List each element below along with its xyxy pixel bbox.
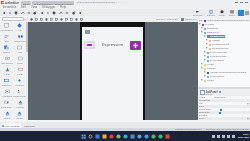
button[interactable]: View [31,5,38,9]
button[interactable]: Text [0,33,13,44]
button[interactable]: Canvas tool 2 [35,18,38,21]
button[interactable]: Taskbar app 12 [158,134,163,139]
button[interactable]: Tool 3 [14,11,18,15]
button[interactable]: Label [0,66,13,77]
button[interactable]: Timer [13,55,26,66]
button[interactable]: Installers [207,10,215,16]
button[interactable]: RadioGroup [13,88,26,99]
button[interactable]: Taskbar app 4 [102,134,107,139]
button[interactable]: Name [198,96,250,99]
button[interactable]: Tool 9 [52,11,56,15]
button[interactable]: Blocks [0,44,13,55]
button[interactable]: Tool 6 [33,11,37,15]
button[interactable]: PlusBar [198,38,250,42]
button[interactable]: Dropdown [0,99,13,110]
button[interactable]: Canvas tool 6 [55,18,58,21]
button[interactable]: Checkbox [0,88,13,99]
button[interactable]: Increase [130,41,141,50]
button[interactable]: Taskbar app 10 [144,134,149,139]
button[interactable]: Design [219,10,225,16]
button[interactable]: Blocks [229,10,235,16]
button[interactable]: Tool 2 [8,11,12,15]
button[interactable]: TypeEntry [0,77,13,88]
button[interactable]: Canvas tool 9 [70,18,73,21]
button[interactable]: Upload [13,99,26,110]
button[interactable]: ValueSelected [198,34,250,38]
button[interactable]: Event [198,117,250,120]
button[interactable]: Description [198,99,250,102]
button[interactable]: IncreaseOnClick [198,46,250,50]
button[interactable]: Taskbar app 1 [81,134,86,139]
button[interactable]: Transparent [198,108,250,111]
button[interactable]: Tool 7 [40,11,44,15]
button[interactable]: Tool 4 [21,11,25,15]
button[interactable]: Taskbar app 6 [116,134,121,139]
button[interactable]: Disconnect [193,10,203,16]
button[interactable]: Debugger [24,123,36,128]
button[interactable]: AI Development - general (Clone) [32,1,74,5]
button[interactable]: Call [13,44,26,55]
button[interactable]: PolySystemUI [198,74,250,78]
button[interactable]: Taskbar app 3 [95,134,100,139]
button[interactable]: Steps [21,1,31,5]
button[interactable]: Scripts [198,78,250,82]
button[interactable]: Taskbar app 7 [123,134,128,139]
button[interactable]: Taskbar app 2 [88,134,93,139]
button[interactable]: Themes [198,66,250,70]
button[interactable]: Help [60,5,67,9]
button[interactable]: Canvas tool 4 [45,18,48,21]
button[interactable]: Tool 13 [78,11,82,15]
button[interactable]: Taskbar app 5 [109,134,114,139]
button[interactable]: Canvas tool 7 [60,18,63,21]
button[interactable]: Canvas tool 8 [65,18,68,21]
button[interactable]: Tool 1 [2,11,6,15]
button[interactable]: Edit [21,5,27,9]
button[interactable]: Scripts [198,62,250,66]
button[interactable]: Source [0,110,13,120]
button[interactable]: Symbols [13,77,26,88]
button[interactable]: Pin [13,22,26,33]
staticText: Blocks [3,51,10,54]
button[interactable]: OutputSync [198,30,250,34]
button[interactable]: All Views [198,22,250,26]
button[interactable]: Tool Storage [2,123,20,128]
button[interactable]: Taskbar app 11 [151,134,156,139]
button[interactable]: File [198,102,250,105]
button[interactable]: Canvas tool 11 [80,18,83,21]
button[interactable]: Tool 8 [46,11,50,15]
button[interactable]: Target [13,110,26,120]
button[interactable]: Canvas tool 1 [30,18,33,21]
button[interactable]: Sub Blocks [0,55,13,66]
button[interactable]: Expression [13,33,26,44]
button[interactable]: Tool 12 [72,11,76,15]
button[interactable]: Search palette [2,17,24,21]
button[interactable]: PolySystemUI [198,58,250,62]
button[interactable]: Input [13,66,26,77]
button[interactable]: Taskbar app 9 [137,134,142,139]
button[interactable]: Enabled [198,114,250,117]
button[interactable]: Decrease [84,41,95,49]
button[interactable]: Taskbar app 8 [130,134,135,139]
button[interactable]: Address bar [76,1,128,4]
button[interactable]: PolySystemTrack [198,50,250,54]
button[interactable]: Contenedor [0,22,13,33]
button[interactable]: Canvas tool 3 [40,18,43,21]
button[interactable]: State [198,105,250,108]
button[interactable]: Canvas tool 5 [50,18,53,21]
button[interactable]: DecreaseOnClick [198,42,250,46]
button[interactable]: Debugger [42,5,56,9]
button[interactable]: Registered [198,111,250,114]
button[interactable]: Ensamble [3,5,17,9]
button[interactable]: Combobox [198,26,250,30]
button[interactable]: Canvas tool 10 [75,18,78,21]
button[interactable]: Quiz.resources/Resources/program [198,70,250,74]
button[interactable]: Tool 10 [59,11,63,15]
staticText: Dropdown [1,106,12,109]
button[interactable]: PolyControlMap [198,54,250,58]
button[interactable]: Tool 11 [65,11,69,15]
button[interactable]: Tool 5 [27,11,31,15]
staticText: Text [4,40,9,43]
button[interactable]: Taskbar app 13 [165,134,170,139]
